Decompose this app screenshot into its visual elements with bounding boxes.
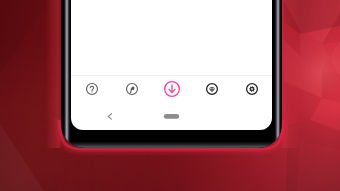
- button[interactable]: Rewards: [192, 76, 232, 102]
- button[interactable]: Account: [112, 76, 152, 102]
- button[interactable]: Help: [71, 76, 112, 102]
- button[interactable]: Downloads: [152, 76, 192, 102]
- button[interactable]: Settings: [232, 76, 272, 102]
